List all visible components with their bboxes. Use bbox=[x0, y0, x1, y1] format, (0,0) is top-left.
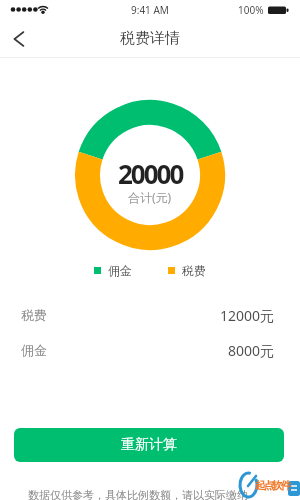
staticText: 重新计算 bbox=[121, 436, 177, 454]
staticText: 20000 bbox=[118, 156, 183, 191]
staticText: 8000元 bbox=[228, 341, 275, 360]
staticText: 数据仅供参考，具体比例数额，请以实际缴纳 bbox=[28, 488, 248, 500]
staticText: 佣金 bbox=[21, 342, 47, 358]
staticText: 税费 bbox=[21, 307, 47, 323]
staticText: 佣金 bbox=[108, 263, 132, 278]
button[interactable]: 重新计算 bbox=[14, 428, 284, 462]
staticText: 税费 bbox=[182, 263, 206, 278]
button[interactable]: 佣金 bbox=[21, 338, 275, 362]
staticText: 合计(元) bbox=[128, 189, 172, 205]
button[interactable]: 税费 bbox=[21, 303, 275, 327]
staticText: 100% bbox=[238, 3, 264, 17]
staticText: 9:41 AM bbox=[131, 3, 169, 17]
staticText: 起点软件 bbox=[256, 479, 290, 492]
staticText: 税费详情 bbox=[120, 29, 180, 48]
button[interactable] bbox=[6, 26, 32, 52]
staticText: 12000元 bbox=[220, 306, 275, 325]
